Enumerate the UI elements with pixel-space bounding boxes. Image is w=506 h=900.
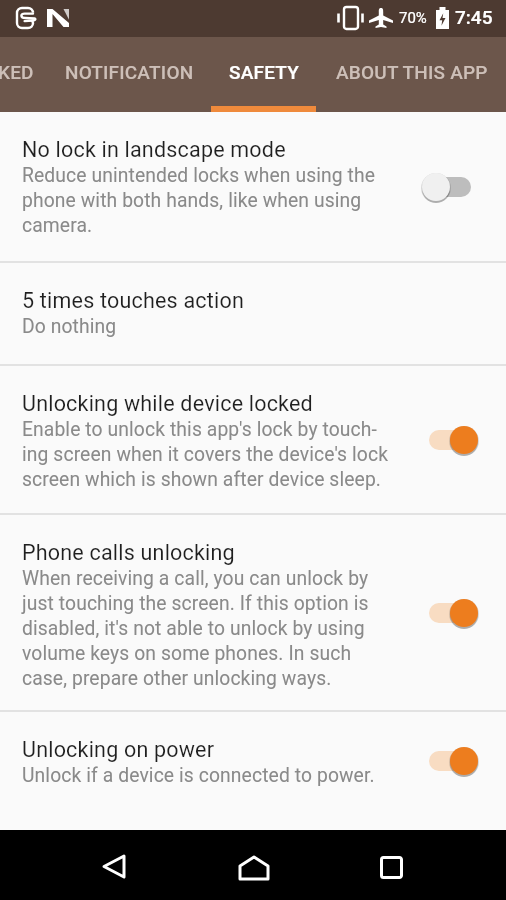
staticText: 70% [399,9,427,27]
staticText: KED [0,61,34,83]
button[interactable] [422,746,478,776]
button[interactable]: NOTIFICATION [44,37,214,112]
button[interactable] [380,856,403,879]
button[interactable]: ABOUT THIS APP [315,37,506,112]
staticText: When receiving a call, you can unlock by… [22,567,369,690]
staticText: ABOUT THIS APP [336,61,488,83]
button[interactable]: 5 times touches action [0,263,506,364]
staticText: Phone calls unlocking [22,540,235,565]
staticText: 5 times touches action [22,288,244,313]
button[interactable]: SAFETY [211,37,316,112]
button[interactable] [422,598,478,628]
staticText: SAFETY [229,61,299,83]
button[interactable] [101,853,127,880]
button[interactable] [238,855,270,881]
button[interactable] [422,172,478,202]
staticText: NOTIFICATION [65,61,194,83]
staticText: Unlocking while device locked [22,391,313,416]
staticText: Unlock if a device is connected to power… [22,764,375,787]
button[interactable]: Phone calls unlocking [0,515,506,710]
staticText: Do nothing [22,315,117,338]
button[interactable]: Unlocking on power [0,712,506,830]
staticText: No lock in landscape mode [22,137,286,162]
staticText: Reduce unintended locks when using the p… [22,164,376,237]
staticText: Unlocking on power [22,737,215,762]
staticText: 7:45 [455,6,493,28]
button[interactable] [422,425,478,455]
button[interactable]: KED [0,37,48,112]
button[interactable]: Unlocking while device locked [0,366,506,513]
staticText: Enable to unlock this app's lock by touc… [22,418,389,491]
button[interactable]: No lock in landscape mode [0,112,506,261]
